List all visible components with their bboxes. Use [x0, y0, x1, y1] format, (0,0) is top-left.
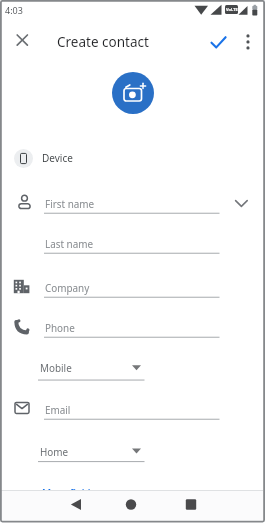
button[interactable] [36, 438, 148, 464]
button[interactable] [40, 190, 222, 215]
button[interactable] [40, 274, 222, 299]
staticText: VoLTE [226, 7, 238, 12]
button[interactable] [40, 478, 120, 492]
button[interactable] [10, 145, 150, 171]
button[interactable] [36, 355, 148, 381]
staticText: Email [45, 403, 71, 416]
staticText: First name [45, 197, 95, 210]
staticText: Home [40, 445, 69, 458]
button[interactable] [172, 492, 208, 517]
button[interactable] [12, 30, 34, 52]
staticText: Mobile [40, 361, 72, 374]
button[interactable] [40, 396, 222, 421]
button[interactable] [40, 230, 222, 255]
button[interactable] [40, 314, 222, 339]
staticText: Phone [45, 321, 75, 334]
staticText: 4:03 [5, 4, 23, 16]
button[interactable] [206, 31, 230, 53]
staticText: Create contact [57, 33, 149, 51]
button[interactable] [58, 492, 94, 517]
button[interactable] [113, 492, 149, 517]
staticText: Device [42, 151, 73, 165]
staticText: Last name [45, 237, 94, 250]
button[interactable] [230, 192, 254, 214]
button[interactable] [240, 31, 258, 53]
staticText: More fields [42, 486, 96, 500]
button[interactable] [112, 72, 154, 114]
staticText: Company [45, 281, 90, 294]
